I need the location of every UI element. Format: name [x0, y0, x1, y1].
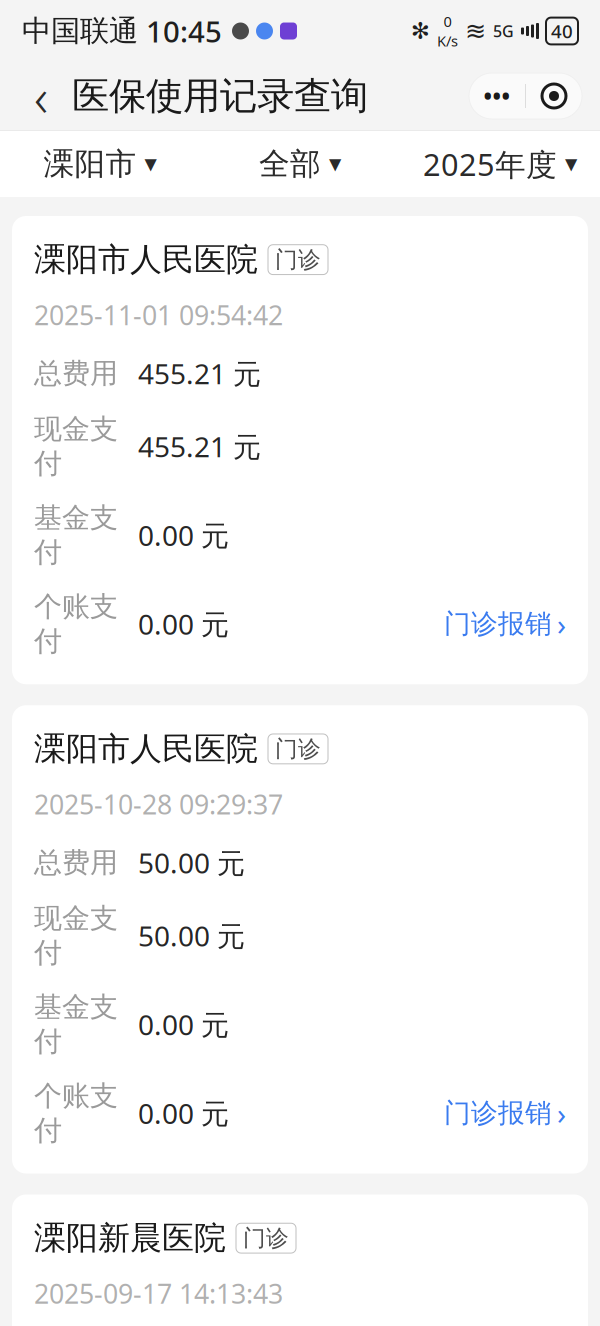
staticText: 总费用 [34, 356, 118, 390]
button[interactable]: 全部 [200, 131, 400, 197]
staticText: ▼ [329, 155, 341, 173]
staticText: 基金支付 [34, 990, 118, 1059]
staticText: › [557, 1094, 566, 1133]
staticText: 溧阳市人民医院 [34, 240, 258, 279]
staticText: 个账支付 [34, 589, 118, 658]
staticText: 门诊 [243, 1224, 289, 1252]
staticText: 0.00 元 [138, 1006, 229, 1043]
staticText: 门诊 [275, 246, 321, 273]
staticText: 中国联通 [22, 13, 138, 49]
staticText: 2025-11-01 09:54:42 [34, 297, 283, 333]
button[interactable]: 2025年度 [400, 130, 600, 198]
staticText: 0.00 元 [138, 605, 229, 642]
staticText: 现金支付 [34, 412, 118, 481]
staticText: 455.21 元 [138, 355, 261, 392]
staticText: ••• [483, 81, 510, 111]
staticText: ≋ [465, 17, 486, 45]
button[interactable]: 门诊报销 [434, 600, 566, 647]
button[interactable]: 门诊报销 [434, 1090, 566, 1137]
staticText: ✻ [411, 18, 430, 44]
staticText: 现金支付 [34, 901, 118, 970]
staticText: 0 [443, 11, 451, 31]
staticText: ▼ [565, 155, 577, 173]
button[interactable]: 返回 [18, 69, 64, 123]
staticText: 50.00 元 [138, 917, 245, 954]
button[interactable]: 溧阳市 [0, 131, 200, 197]
staticText: K/s [437, 31, 458, 50]
staticText: 门诊 [275, 735, 321, 763]
staticText: 溧阳市人民医院 [34, 729, 258, 768]
staticText: 总费用 [34, 845, 118, 880]
staticText: 门诊报销 [444, 607, 552, 640]
staticText: 全部 [259, 145, 321, 183]
button[interactable]: 更多 [469, 73, 525, 119]
button[interactable]: 溧阳新晨医院 [12, 1194, 588, 1326]
staticText: 50.00 元 [138, 844, 245, 881]
staticText: ▼ [144, 155, 156, 173]
staticText: 溧阳新晨医院 [34, 1218, 226, 1258]
button[interactable]: 溧阳市人民医院 [12, 216, 588, 684]
staticText: › [557, 604, 566, 643]
staticText: 个账支付 [34, 1079, 118, 1147]
staticText: 医保使用记录查询 [72, 73, 368, 119]
button[interactable]: 关闭 [526, 73, 582, 119]
staticText: 2025年度 [423, 144, 557, 184]
staticText: 0.00 元 [138, 1094, 229, 1132]
staticText: 0.00 元 [138, 516, 229, 554]
staticText: 40 [551, 19, 573, 43]
staticText: 溧阳市 [43, 145, 136, 183]
staticText: 门诊报销 [444, 1097, 552, 1129]
staticText: ‹ [34, 61, 48, 131]
staticText: 2025-10-28 09:29:37 [34, 787, 283, 822]
staticText: 455.21 元 [138, 428, 261, 465]
staticText: 5G [493, 20, 514, 42]
staticText: 基金支付 [34, 501, 118, 569]
staticText: 10:45 [138, 11, 222, 50]
staticText: 2025-09-17 14:13:43 [34, 1276, 283, 1311]
button[interactable]: 溧阳市人民医院 [12, 705, 588, 1173]
